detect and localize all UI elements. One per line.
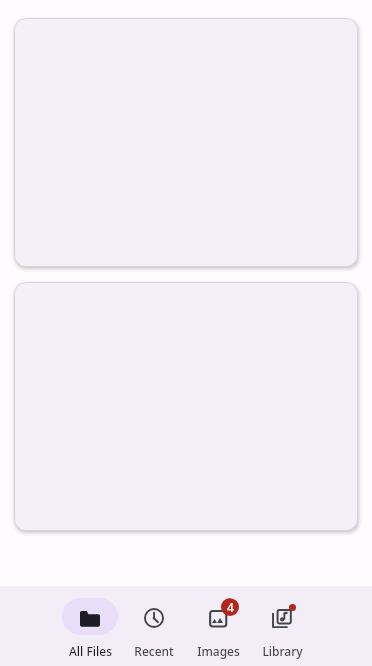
- button[interactable]: Images: [186, 586, 250, 659]
- staticText: 4: [227, 599, 234, 615]
- button[interactable]: Library: [250, 586, 314, 659]
- staticText: Library: [262, 643, 303, 659]
- button[interactable]: [14, 282, 358, 531]
- button[interactable]: [14, 18, 358, 267]
- button[interactable]: All Files: [58, 586, 122, 659]
- staticText: All Files: [69, 643, 112, 659]
- staticText: Images: [197, 643, 240, 659]
- button[interactable]: Recent: [122, 586, 186, 659]
- staticText: Recent: [134, 643, 174, 659]
